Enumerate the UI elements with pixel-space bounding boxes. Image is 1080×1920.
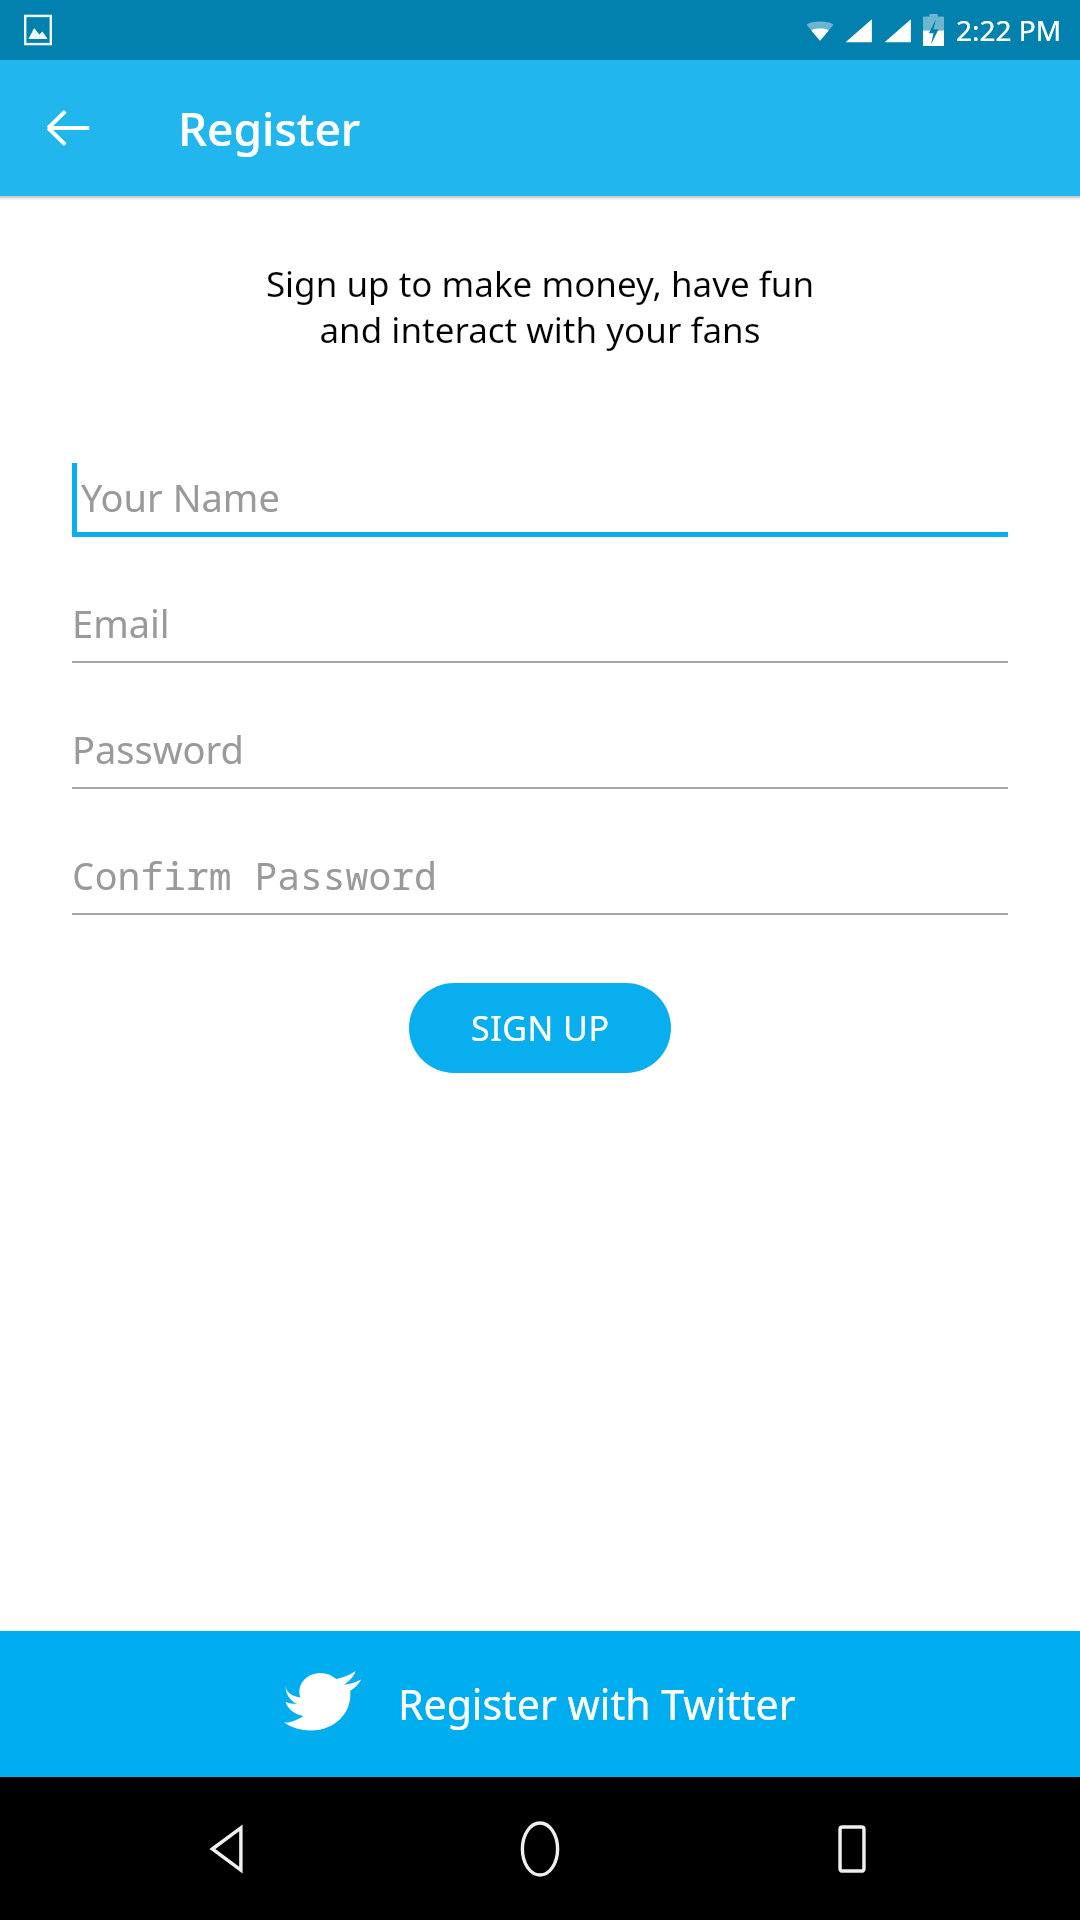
- staticText: Confirm Password: [72, 849, 437, 901]
- staticText: Password: [72, 723, 244, 775]
- button[interactable]: SIGN UP: [409, 983, 671, 1073]
- staticText: Your Name: [81, 471, 280, 523]
- button[interactable]: Password: [72, 691, 1008, 789]
- staticText: Email: [72, 597, 170, 649]
- staticText: 2:22 PM: [956, 11, 1062, 49]
- button[interactable]: Confirm Password: [72, 817, 1008, 915]
- button[interactable]: Back: [180, 1801, 276, 1897]
- button[interactable]: Register with Twitter: [0, 1631, 1080, 1777]
- staticText: Sign up to make money, have fun and inte…: [0, 260, 1080, 353]
- button[interactable]: Email: [72, 565, 1008, 663]
- button[interactable]: Your Name: [72, 439, 1008, 537]
- staticText: SIGN UP: [471, 1005, 610, 1051]
- staticText: Register: [178, 97, 361, 160]
- button[interactable]: Recent apps: [804, 1801, 900, 1897]
- staticText: Register with Twitter: [398, 1676, 796, 1732]
- button[interactable]: Home: [492, 1801, 588, 1897]
- button[interactable]: Back: [28, 88, 108, 168]
